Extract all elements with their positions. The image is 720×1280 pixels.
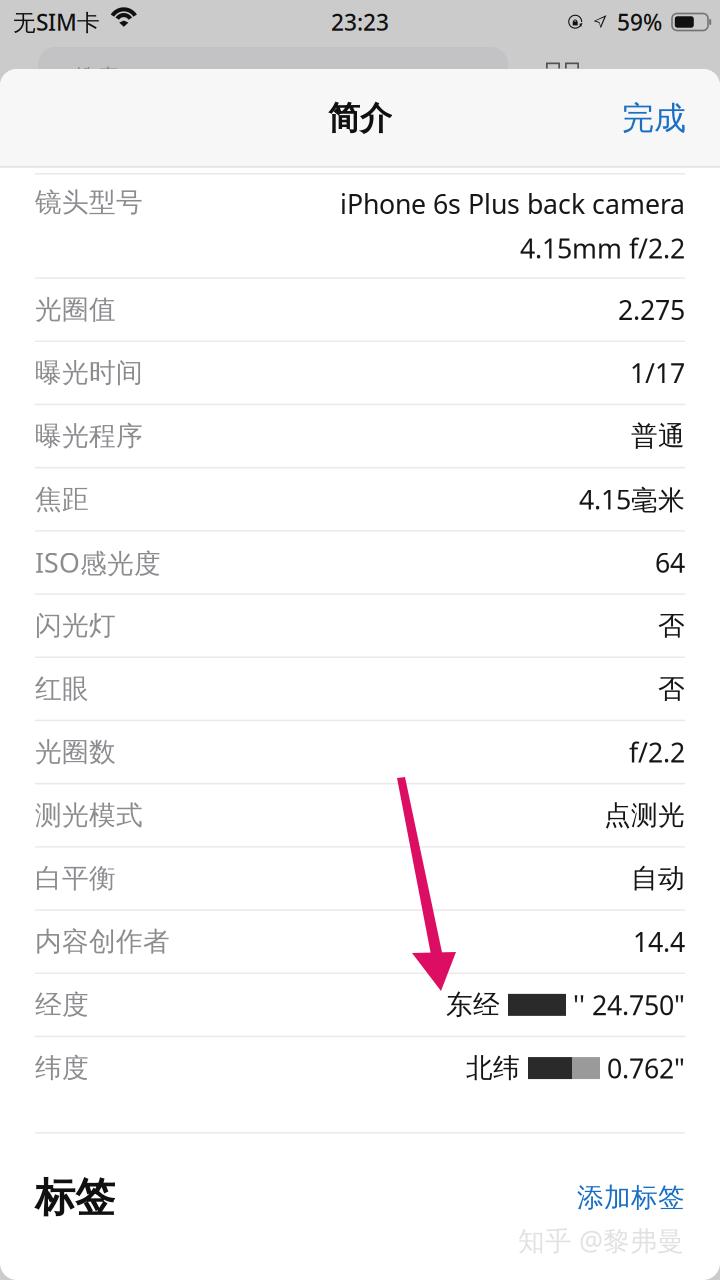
staticText: 64 <box>655 545 685 580</box>
staticText: 添加标签 <box>577 1181 685 1214</box>
staticText: 光圈数 <box>35 736 116 768</box>
staticText: 白平衡 <box>35 862 116 895</box>
staticText: 红眼 <box>35 672 89 705</box>
staticText: 点测光 <box>604 799 685 832</box>
staticText: 闪光灯 <box>35 609 116 642</box>
staticText: 否 <box>658 672 685 705</box>
staticText: 北纬 <box>466 1052 528 1084</box>
staticText: 23:23 <box>331 7 389 37</box>
staticText: 纬度 <box>35 1052 89 1084</box>
staticText: 曝光程序 <box>35 420 143 452</box>
staticText: 焦距 <box>35 483 89 516</box>
staticText: 完成 <box>622 99 686 138</box>
staticText: ISO感光度 <box>35 545 161 580</box>
staticText: 简介 <box>328 99 392 138</box>
staticText: 自动 <box>631 862 685 895</box>
staticText: 经度 <box>35 988 89 1021</box>
staticText: 4.15mm f/2.2 <box>520 230 685 266</box>
staticText: 否 <box>658 609 685 642</box>
staticText: 0.762" <box>600 1050 685 1086</box>
staticText: 曝光时间 <box>35 356 143 389</box>
staticText: 标签 <box>35 1173 115 1222</box>
staticText: '' 24.750" <box>566 987 685 1022</box>
staticText: 59% <box>617 7 662 37</box>
staticText: 知乎 @黎弗曼 <box>518 1223 684 1258</box>
staticText: 无SIM卡 <box>13 7 100 37</box>
staticText: 东经 <box>446 988 508 1021</box>
staticText: 搜索 <box>74 64 120 92</box>
staticText: iPhone 6s Plus back camera <box>340 186 685 221</box>
staticText: 光圈值 <box>35 293 116 326</box>
staticText: 普通 <box>631 420 685 452</box>
staticText: 2.275 <box>618 292 685 327</box>
staticText: f/2.2 <box>629 734 685 770</box>
staticText: 4.15毫米 <box>579 481 685 517</box>
staticText: 内容创作者 <box>35 925 170 958</box>
staticText: 测光模式 <box>35 799 143 832</box>
staticText: 镜头型号 <box>35 186 143 219</box>
button[interactable]: 完成 <box>588 83 720 154</box>
button[interactable]: 添加标签 <box>577 1181 685 1214</box>
staticText: 1/17 <box>630 355 685 390</box>
staticText: 14.4 <box>633 924 685 959</box>
